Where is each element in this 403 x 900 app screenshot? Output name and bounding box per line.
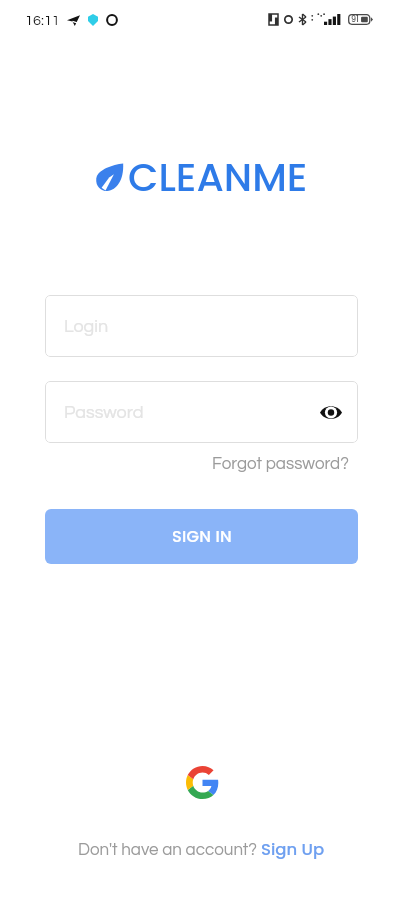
staticText: 91 bbox=[351, 14, 359, 25]
staticText: 16:11 bbox=[25, 13, 60, 28]
staticText: Password bbox=[64, 403, 144, 422]
staticText: SIGN IN bbox=[172, 525, 232, 548]
button[interactable]: SIGN IN bbox=[45, 509, 358, 564]
staticText: CLEANME bbox=[128, 150, 308, 205]
staticText: Don't have an account? bbox=[78, 841, 261, 859]
button[interactable]: Show password bbox=[316, 397, 346, 427]
button[interactable]: Login bbox=[45, 295, 358, 357]
staticText: Login bbox=[64, 317, 109, 336]
button[interactable]: Password bbox=[45, 381, 358, 443]
button[interactable]: Forgot password? bbox=[212, 455, 349, 473]
button[interactable]: Sign in with Google bbox=[182, 762, 222, 802]
button[interactable]: Sign Up bbox=[261, 838, 325, 861]
